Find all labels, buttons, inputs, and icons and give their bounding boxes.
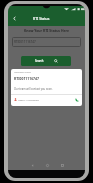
staticText: Agent : Processing	[18, 98, 39, 101]
button[interactable]: Back	[28, 161, 36, 169]
button[interactable]: Home	[43, 161, 51, 169]
button[interactable]: Call agent	[73, 96, 81, 104]
staticText: Application Status	[14, 71, 31, 74]
button[interactable]: Back	[9, 13, 20, 24]
staticText: Know Your RTI Status Here	[8, 28, 85, 33]
button[interactable]: Search	[21, 56, 71, 66]
staticText: Search	[35, 59, 44, 63]
staticText: RTI Status	[33, 16, 50, 21]
button[interactable]: Recent apps	[58, 161, 66, 169]
staticText: RTI0011116747	[14, 76, 39, 81]
staticText: RTI0011116747	[14, 40, 36, 44]
staticText: Our team will contact you soon.	[14, 87, 53, 91]
button[interactable]: Application Status	[11, 69, 82, 106]
